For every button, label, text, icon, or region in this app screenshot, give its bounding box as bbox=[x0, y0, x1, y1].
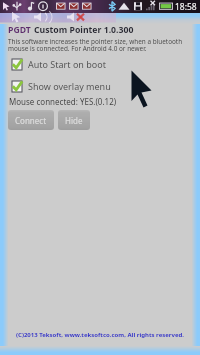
staticText: 18:58 bbox=[175, 1, 197, 13]
staticText: Connect bbox=[15, 115, 47, 126]
staticText: This software increases the pointer size… bbox=[8, 37, 183, 53]
button[interactable]: Connect bbox=[8, 110, 54, 130]
staticText: (C)2013 Teksoft, www.teksoftco.com, All … bbox=[0, 331, 200, 339]
staticText: Mouse connected: YES.(0.12) bbox=[9, 96, 117, 107]
button[interactable]: Hide bbox=[58, 110, 90, 130]
staticText: Show overlay menu bbox=[28, 80, 111, 92]
staticText: Custom Pointer 1.0.300 bbox=[34, 24, 134, 36]
button[interactable]: Show overlay menu bbox=[0, 80, 200, 92]
staticText: Auto Start on boot bbox=[28, 58, 106, 70]
button[interactable]: Auto Start on boot bbox=[0, 58, 200, 70]
staticText: PGDT bbox=[8, 24, 34, 36]
staticText: Hide bbox=[65, 115, 83, 126]
